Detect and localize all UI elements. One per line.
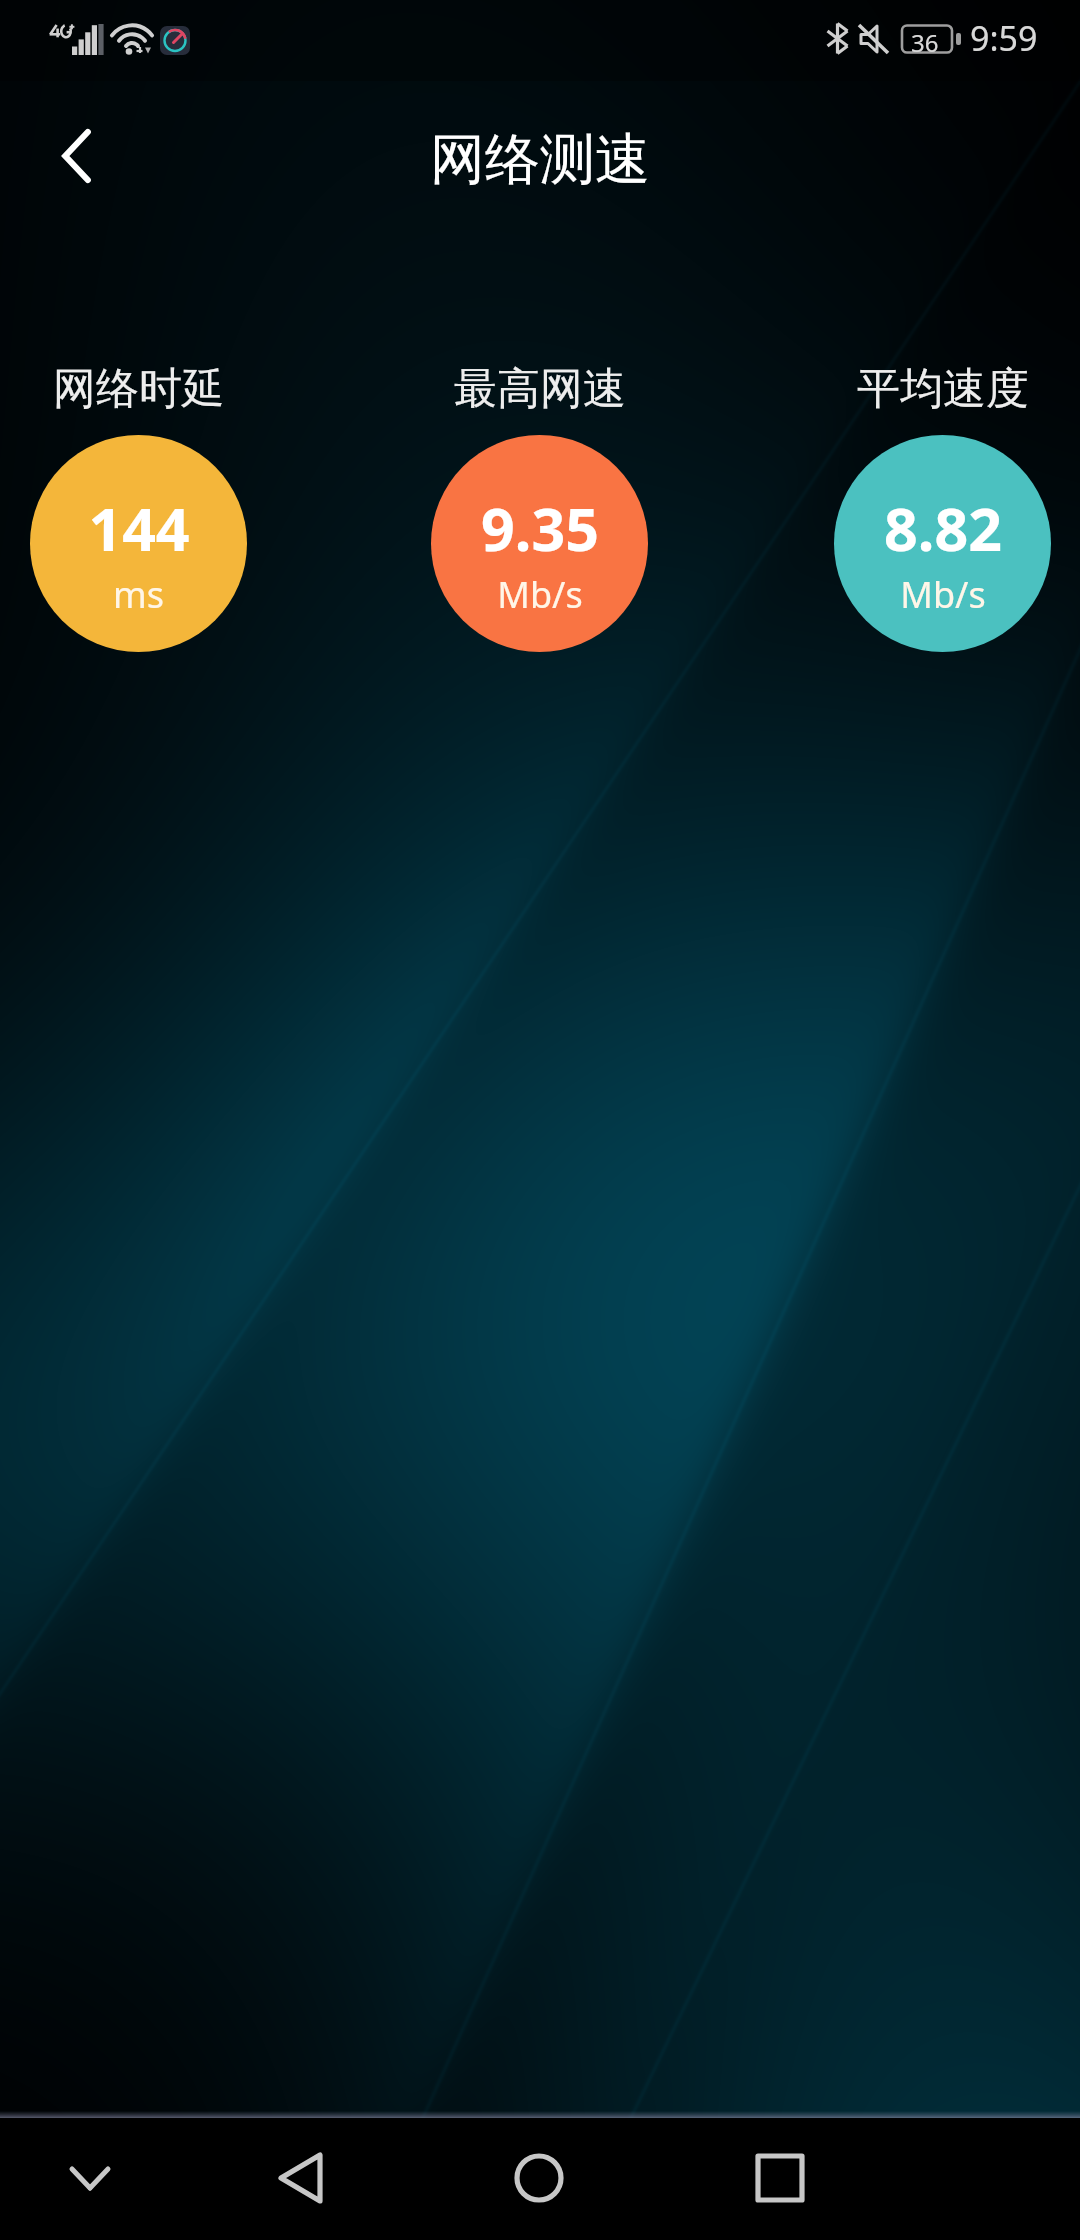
staticText: Mb/s [900, 570, 986, 619]
button[interactable]: Back [27, 108, 123, 204]
button[interactable]: Back [247, 2123, 357, 2233]
staticText: 平均速度 [857, 362, 1029, 416]
staticText: 9:59 [970, 15, 1038, 61]
staticText: Mb/s [497, 570, 583, 619]
button[interactable]: 8.82 [834, 435, 1051, 652]
staticText: 网络测速 [430, 125, 650, 194]
staticText: 8.82 [884, 488, 1002, 568]
button[interactable]: Recents [725, 2123, 835, 2233]
button[interactable]: 9.35 [431, 435, 648, 652]
staticText: 网络时延 [53, 362, 225, 416]
staticText: 最高网速 [454, 362, 626, 416]
staticText: 144 [88, 488, 190, 568]
button[interactable]: 144 [30, 435, 247, 652]
staticText: ms [113, 570, 164, 619]
staticText: 36 [911, 26, 939, 59]
button[interactable]: Hide keyboard [35, 2123, 145, 2233]
button[interactable]: Home [484, 2123, 594, 2233]
staticText: 9.35 [481, 488, 599, 568]
